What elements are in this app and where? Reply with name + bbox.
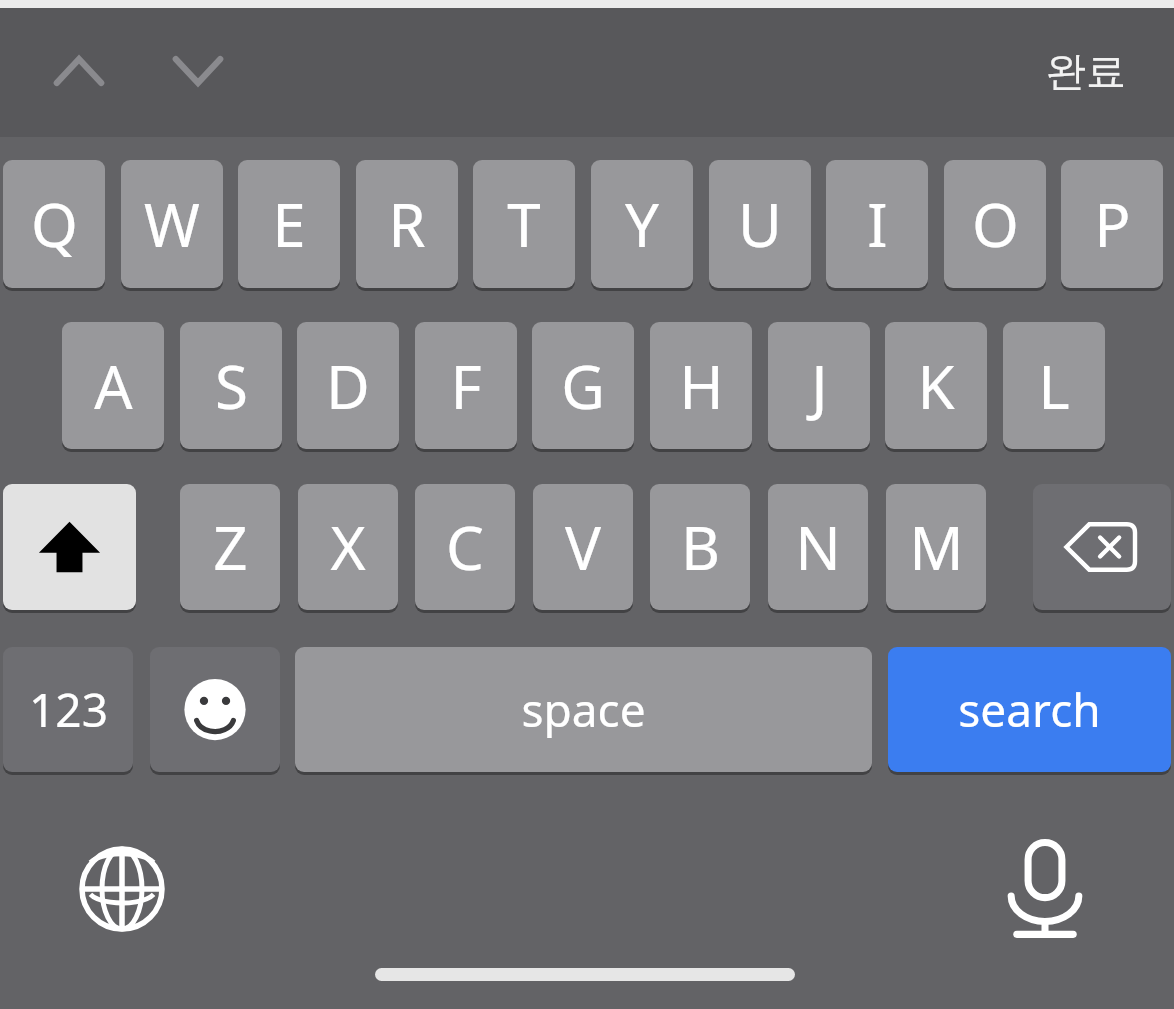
staticText: I — [867, 183, 888, 265]
button[interactable]: A — [62, 322, 164, 449]
staticText: A — [94, 345, 133, 427]
button[interactable]: Emoji — [150, 647, 280, 772]
button[interactable]: V — [533, 484, 633, 610]
staticText: search — [958, 678, 1101, 741]
staticText: H — [679, 345, 724, 427]
button[interactable]: Q — [3, 160, 105, 288]
button[interactable]: R — [356, 160, 458, 288]
button[interactable]: J — [768, 322, 870, 449]
button[interactable]: P — [1061, 160, 1163, 288]
staticText: V — [565, 506, 601, 588]
button[interactable]: U — [709, 160, 811, 288]
button[interactable]: Shift — [3, 484, 136, 610]
staticText: D — [326, 345, 370, 427]
button[interactable]: H — [650, 322, 752, 449]
button[interactable]: D — [297, 322, 399, 449]
button[interactable]: F — [415, 322, 517, 449]
button[interactable]: Y — [591, 160, 693, 288]
staticText: B — [681, 506, 720, 588]
staticText: Y — [625, 183, 659, 265]
staticText: space — [521, 678, 646, 741]
button[interactable]: G — [532, 322, 634, 449]
button[interactable]: Backspace — [1033, 484, 1171, 610]
button[interactable]: search — [888, 647, 1171, 772]
staticText: G — [561, 345, 605, 427]
button[interactable]: C — [415, 484, 515, 610]
staticText: M — [909, 506, 964, 588]
staticText: 123 — [29, 678, 108, 741]
button[interactable]: Z — [180, 484, 280, 610]
staticText: N — [795, 506, 841, 588]
staticText: F — [450, 345, 482, 427]
button[interactable]: K — [885, 322, 987, 449]
staticText: C — [446, 506, 484, 588]
button[interactable]: W — [121, 160, 223, 288]
staticText: K — [917, 345, 955, 427]
button[interactable]: B — [650, 484, 750, 610]
button[interactable]: M — [886, 484, 986, 610]
staticText: T — [507, 183, 541, 265]
button[interactable]: 완료 — [1030, 38, 1142, 104]
button[interactable]: space — [295, 647, 872, 772]
staticText: P — [1094, 183, 1131, 265]
button[interactable]: S — [180, 322, 282, 449]
button[interactable]: Next field — [161, 36, 235, 106]
button[interactable]: X — [298, 484, 398, 610]
staticText: W — [144, 183, 200, 265]
staticText: S — [215, 345, 248, 427]
button[interactable]: L — [1003, 322, 1105, 449]
staticText: Q — [31, 183, 78, 265]
staticText: O — [972, 183, 1019, 265]
staticText: U — [738, 183, 782, 265]
staticText: J — [811, 345, 828, 427]
button[interactable]: I — [826, 160, 928, 288]
button[interactable]: Previous field — [42, 36, 116, 106]
staticText: Z — [213, 506, 248, 588]
staticText: L — [1038, 345, 1070, 427]
staticText: X — [330, 506, 366, 588]
button[interactable]: N — [768, 484, 868, 610]
button[interactable]: E — [238, 160, 340, 288]
button[interactable]: Change keyboard language — [72, 838, 172, 940]
button[interactable]: T — [473, 160, 575, 288]
button[interactable]: O — [944, 160, 1046, 288]
button[interactable]: Voice input — [998, 835, 1092, 943]
staticText: E — [272, 183, 306, 265]
staticText: R — [388, 183, 426, 265]
staticText: 완료 — [1046, 46, 1126, 96]
button[interactable]: 123 — [3, 647, 133, 772]
